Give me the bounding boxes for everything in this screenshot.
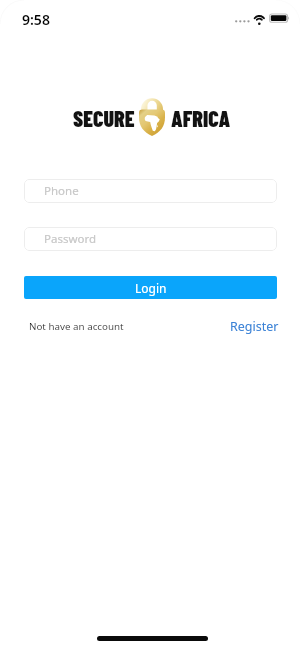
other: Secure Africa padlock logo	[139, 98, 165, 136]
staticText: AFRICA	[171, 105, 231, 131]
staticText: 9:58	[22, 10, 50, 29]
button[interactable]: Password	[24, 227, 277, 251]
staticText: Phone	[44, 183, 79, 199]
staticText: Register	[230, 318, 279, 335]
staticText: Login	[135, 280, 167, 296]
staticText: Password	[44, 231, 97, 247]
staticText: SECURE	[73, 105, 135, 131]
staticText: Not have an account	[29, 320, 124, 333]
other: Signal, Wi-Fi and battery status	[234, 12, 292, 26]
button[interactable]: Phone	[24, 179, 277, 203]
button[interactable]: Register	[230, 318, 279, 335]
button[interactable]: Login	[24, 276, 277, 299]
